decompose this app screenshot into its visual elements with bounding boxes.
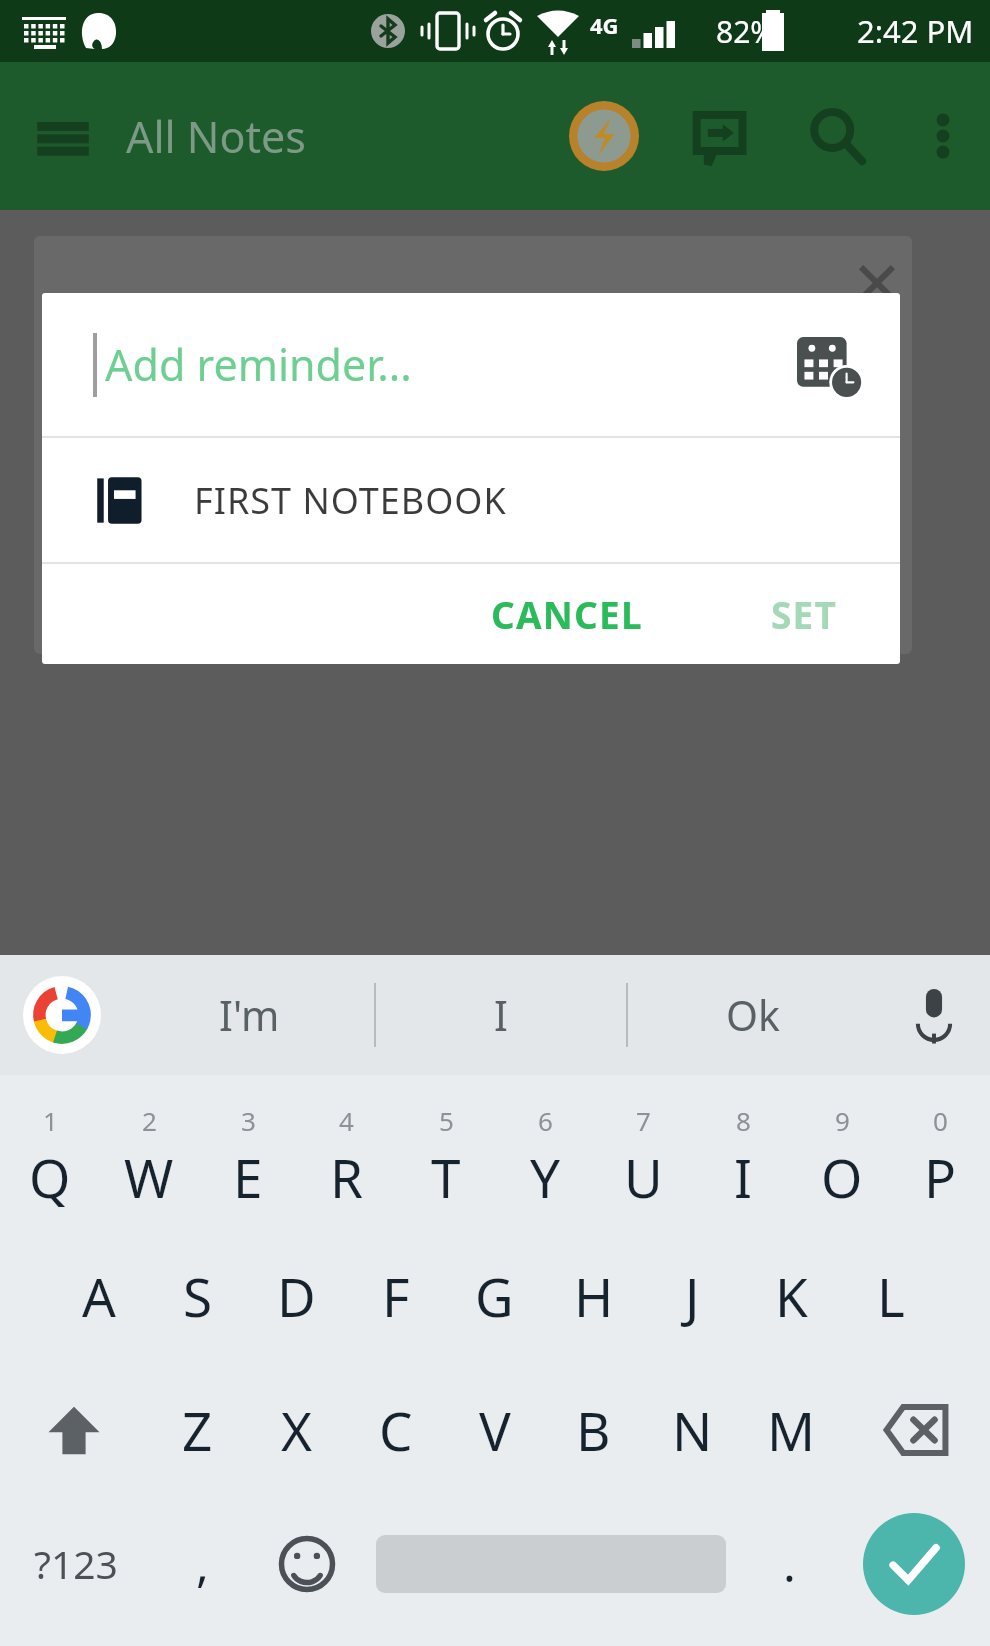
- staticText: Add reminder...: [105, 335, 412, 394]
- staticText: E: [233, 1141, 263, 1213]
- button[interactable]: F: [346, 1229, 445, 1363]
- button[interactable]: 1: [0, 1087, 99, 1229]
- button[interactable]: D: [247, 1229, 346, 1363]
- button[interactable]: Z: [148, 1363, 247, 1497]
- button[interactable]: ,: [152, 1497, 252, 1630]
- staticText: J: [685, 1260, 700, 1332]
- staticText: 4G: [590, 10, 619, 40]
- staticText: X: [281, 1394, 313, 1466]
- button[interactable]: M: [742, 1363, 841, 1497]
- button[interactable]: Emoji: [252, 1497, 362, 1630]
- button[interactable]: Shift: [0, 1363, 148, 1497]
- staticText: T: [431, 1141, 461, 1213]
- staticText: W: [124, 1141, 174, 1213]
- staticText: 2: [142, 1103, 157, 1138]
- button[interactable]: 4: [297, 1087, 396, 1229]
- staticText: 4: [339, 1103, 354, 1138]
- button[interactable]: H: [544, 1229, 643, 1363]
- staticText: 9: [835, 1103, 850, 1138]
- staticText: A: [82, 1260, 116, 1332]
- staticText: M: [767, 1394, 816, 1466]
- staticText: K: [775, 1260, 808, 1332]
- button[interactable]: X: [247, 1363, 346, 1497]
- staticText: Y: [530, 1141, 560, 1213]
- button[interactable]: 0: [891, 1087, 990, 1229]
- staticText: 5: [439, 1103, 454, 1138]
- staticText: I'm: [219, 987, 280, 1043]
- button[interactable]: Search: [778, 62, 896, 210]
- button[interactable]: C: [346, 1363, 445, 1497]
- button[interactable]: 7: [594, 1087, 693, 1229]
- button[interactable]: 2: [99, 1087, 198, 1229]
- staticText: B: [576, 1394, 611, 1466]
- staticText: S: [183, 1260, 213, 1332]
- button[interactable]: SET: [747, 564, 862, 664]
- button[interactable]: Add reminder...: [42, 293, 900, 436]
- button[interactable]: 5: [396, 1087, 495, 1229]
- button[interactable]: Premium: [548, 62, 660, 210]
- button[interactable]: L: [841, 1229, 940, 1363]
- staticText: I: [734, 1141, 752, 1213]
- staticText: ,: [196, 1531, 209, 1596]
- staticText: H: [574, 1260, 614, 1332]
- staticText: 82%: [716, 11, 776, 52]
- staticText: 0: [933, 1103, 948, 1138]
- staticText: Q: [29, 1141, 71, 1213]
- button[interactable]: G: [445, 1229, 544, 1363]
- staticText: FIRST NOTEBOOK: [194, 476, 507, 525]
- button[interactable]: S: [148, 1229, 247, 1363]
- staticText: U: [624, 1141, 663, 1213]
- button[interactable]: Open navigation drawer: [0, 62, 126, 210]
- staticText: 6: [538, 1103, 553, 1138]
- button[interactable]: 6: [495, 1087, 594, 1229]
- button[interactable]: Close: [846, 252, 908, 314]
- button[interactable]: CANCEL: [467, 564, 667, 664]
- staticText: N: [672, 1394, 713, 1466]
- staticText: 2:42 PM: [857, 10, 974, 52]
- button[interactable]: Space: [376, 1497, 726, 1630]
- button[interactable]: A: [49, 1229, 148, 1363]
- staticText: L: [877, 1260, 905, 1332]
- button[interactable]: Ok: [628, 955, 878, 1075]
- staticText: R: [330, 1141, 363, 1213]
- button[interactable]: Pick date and time: [784, 321, 872, 409]
- staticText: O: [821, 1141, 863, 1213]
- button[interactable]: ?123: [0, 1497, 152, 1630]
- staticText: CANCEL: [491, 589, 643, 639]
- staticText: .: [783, 1531, 796, 1596]
- staticText: I: [494, 987, 508, 1043]
- button[interactable]: I: [376, 955, 626, 1075]
- button[interactable]: 8: [693, 1087, 792, 1229]
- button[interactable]: 9: [792, 1087, 891, 1229]
- button[interactable]: V: [445, 1363, 544, 1497]
- staticText: Z: [182, 1394, 213, 1466]
- staticText: V: [479, 1394, 511, 1466]
- button[interactable]: I'm: [124, 955, 374, 1075]
- staticText: 1: [43, 1103, 58, 1138]
- button[interactable]: K: [742, 1229, 841, 1363]
- staticText: C: [379, 1394, 413, 1466]
- button[interactable]: B: [544, 1363, 643, 1497]
- staticText: ?123: [34, 1537, 118, 1590]
- staticText: Ok: [726, 987, 780, 1043]
- staticText: All Notes: [126, 107, 306, 166]
- staticText: 7: [636, 1103, 651, 1138]
- button[interactable]: .: [740, 1497, 838, 1630]
- staticText: F: [382, 1260, 410, 1332]
- staticText: P: [924, 1141, 957, 1213]
- button[interactable]: More options: [896, 62, 990, 210]
- staticText: 3: [241, 1103, 256, 1138]
- button[interactable]: N: [643, 1363, 742, 1497]
- button[interactable]: Enter: [838, 1497, 990, 1630]
- button[interactable]: Google: [0, 955, 124, 1075]
- button[interactable]: Share: [660, 62, 778, 210]
- button[interactable]: 3: [198, 1087, 297, 1229]
- staticText: G: [475, 1260, 514, 1332]
- staticText: D: [277, 1260, 316, 1332]
- staticText: SET: [771, 589, 838, 639]
- button[interactable]: Voice input: [878, 955, 990, 1075]
- button[interactable]: J: [643, 1229, 742, 1363]
- button[interactable]: FIRST NOTEBOOK: [42, 438, 900, 562]
- staticText: 8: [736, 1103, 751, 1138]
- button[interactable]: Backspace: [841, 1363, 990, 1497]
